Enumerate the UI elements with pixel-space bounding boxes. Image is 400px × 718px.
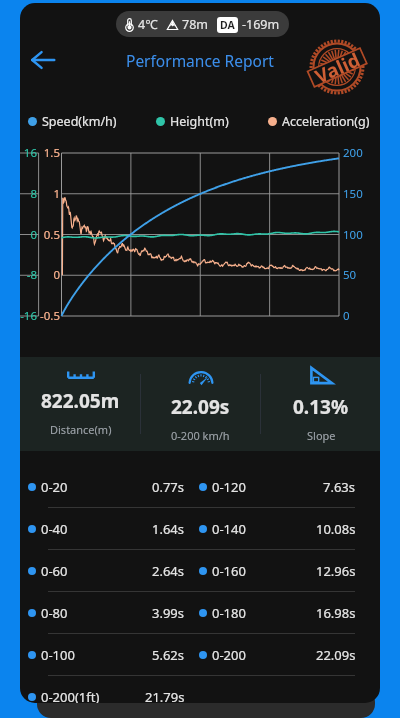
staticText: -0.5	[34, 308, 60, 324]
staticText: 0-40	[41, 520, 68, 538]
button[interactable]: 822.05m	[20, 357, 140, 451]
button[interactable]: 0-20	[28, 466, 356, 507]
staticText: Performance Report	[126, 50, 274, 71]
button[interactable]: Environment info	[125, 11, 280, 37]
staticText: 0-60	[41, 562, 68, 580]
staticText: 5.62s	[152, 646, 185, 664]
staticText: 50	[343, 267, 357, 283]
staticText: 78m	[182, 16, 208, 33]
button[interactable]: 22.09s	[141, 357, 260, 451]
staticText: 100	[343, 227, 363, 243]
button[interactable]: 0-200(1ft)	[28, 676, 356, 703]
staticText: 22.09s	[171, 394, 230, 420]
button[interactable]: Valid stamp	[297, 27, 377, 107]
staticText: 1.64s	[152, 520, 185, 538]
staticText: 16.98s	[316, 604, 356, 622]
staticText: 8	[20, 186, 37, 202]
staticText: Acceleration(g)	[282, 113, 370, 130]
staticText: 0-200(1ft)	[41, 688, 100, 703]
staticText: 21.79s	[145, 688, 185, 703]
staticText: 150	[343, 186, 363, 202]
staticText: 7.63s	[323, 478, 356, 496]
staticText: 2.64s	[152, 562, 185, 580]
staticText: 0	[20, 227, 37, 243]
staticText: 0-200 km/h	[171, 428, 230, 443]
staticText: Valid	[311, 47, 364, 89]
staticText: DA	[220, 18, 235, 32]
button[interactable]: 0-100	[28, 634, 356, 675]
staticText: 0-160	[212, 562, 246, 580]
staticText: 0	[34, 267, 60, 283]
staticText: 0.77s	[152, 478, 185, 496]
staticText: 0-80	[41, 604, 68, 622]
staticText: Speed(km/h)	[42, 113, 117, 130]
staticText: Distance(m)	[50, 422, 112, 437]
staticText: -16	[20, 308, 37, 324]
staticText: 0-120	[212, 478, 246, 496]
staticText: 0-140	[212, 520, 246, 538]
button[interactable]: 0-40	[28, 508, 356, 549]
staticText: 4℃	[138, 16, 158, 33]
staticText: 3.99s	[152, 604, 185, 622]
staticText: 200	[343, 145, 363, 161]
staticText: Slope	[307, 428, 336, 443]
staticText: 822.05m	[41, 388, 120, 414]
staticText: 0-180	[212, 604, 246, 622]
staticText: 0-200	[212, 646, 246, 664]
staticText: 1.5	[34, 145, 60, 161]
staticText: 0.5	[34, 227, 60, 243]
staticText: 16	[20, 145, 37, 161]
staticText: 22.09s	[316, 646, 356, 664]
staticText: -169m	[242, 16, 280, 33]
button[interactable]: 0-80	[28, 592, 356, 633]
staticText: 0-20	[41, 478, 68, 496]
staticText: 1	[34, 186, 60, 202]
staticText: 0	[343, 308, 350, 324]
button[interactable]: 0-60	[28, 550, 356, 591]
button[interactable]: Back	[27, 45, 59, 75]
staticText: 10.08s	[316, 520, 356, 538]
staticText: 12.96s	[316, 562, 356, 580]
staticText: 0.13%	[293, 394, 349, 420]
button[interactable]: 0.13%	[261, 357, 380, 451]
staticText: Height(m)	[170, 113, 229, 130]
staticText: 0-100	[41, 646, 75, 664]
staticText: -8	[20, 267, 37, 283]
